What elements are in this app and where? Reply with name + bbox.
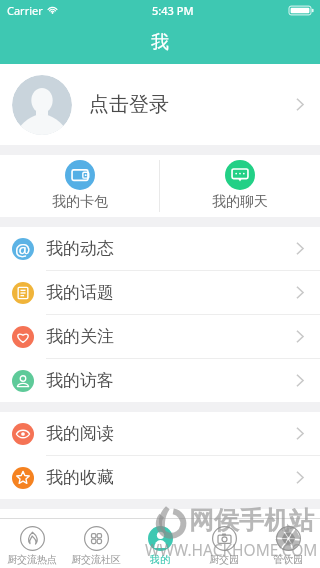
staticText: WWW.HACKHOME.COM <box>145 539 318 560</box>
staticText: 我 <box>151 31 169 54</box>
staticText: 厨交流社区 <box>71 553 121 566</box>
staticText: 网侯手机站 <box>189 505 314 536</box>
staticText: 我的关注 <box>46 326 114 347</box>
staticText: 厨交园 <box>209 553 239 566</box>
staticText: 管饮园 <box>273 553 303 566</box>
staticText: @ <box>15 238 31 260</box>
button[interactable]: 我的卡包 <box>0 155 159 217</box>
staticText: 我的聊天 <box>212 193 268 211</box>
staticText: 5:43 PM <box>152 3 194 18</box>
staticText: 点击登录 <box>89 92 169 117</box>
button[interactable]: 我的关注 <box>0 315 320 358</box>
button[interactable]: 我的 <box>128 519 192 568</box>
button[interactable]: 我的聊天 <box>160 155 320 217</box>
staticText: 我的话题 <box>46 282 114 303</box>
staticText: 厨交流热点 <box>7 553 57 566</box>
button[interactable]: 我的话题 <box>0 271 320 314</box>
staticText: 我的收藏 <box>46 467 114 488</box>
button[interactable]: 厨交流社区 <box>64 519 128 568</box>
button[interactable]: 我的阅读 <box>0 412 320 455</box>
staticText: 我的阅读 <box>46 423 114 444</box>
button[interactable]: @ <box>0 227 320 270</box>
button[interactable]: 厨交流热点 <box>0 519 64 568</box>
staticText: 我的动态 <box>46 238 114 259</box>
staticText: Carrier <box>7 3 43 18</box>
button[interactable]: 管饮园 <box>256 519 320 568</box>
staticText: 我的 <box>150 553 170 566</box>
button[interactable]: 我的收藏 <box>0 456 320 499</box>
button[interactable]: 点击登录 <box>0 64 320 145</box>
button[interactable]: 我的访客 <box>0 359 320 402</box>
button[interactable]: 厨交园 <box>192 519 256 568</box>
staticText: 我的卡包 <box>52 193 108 211</box>
staticText: 我的访客 <box>46 370 114 391</box>
